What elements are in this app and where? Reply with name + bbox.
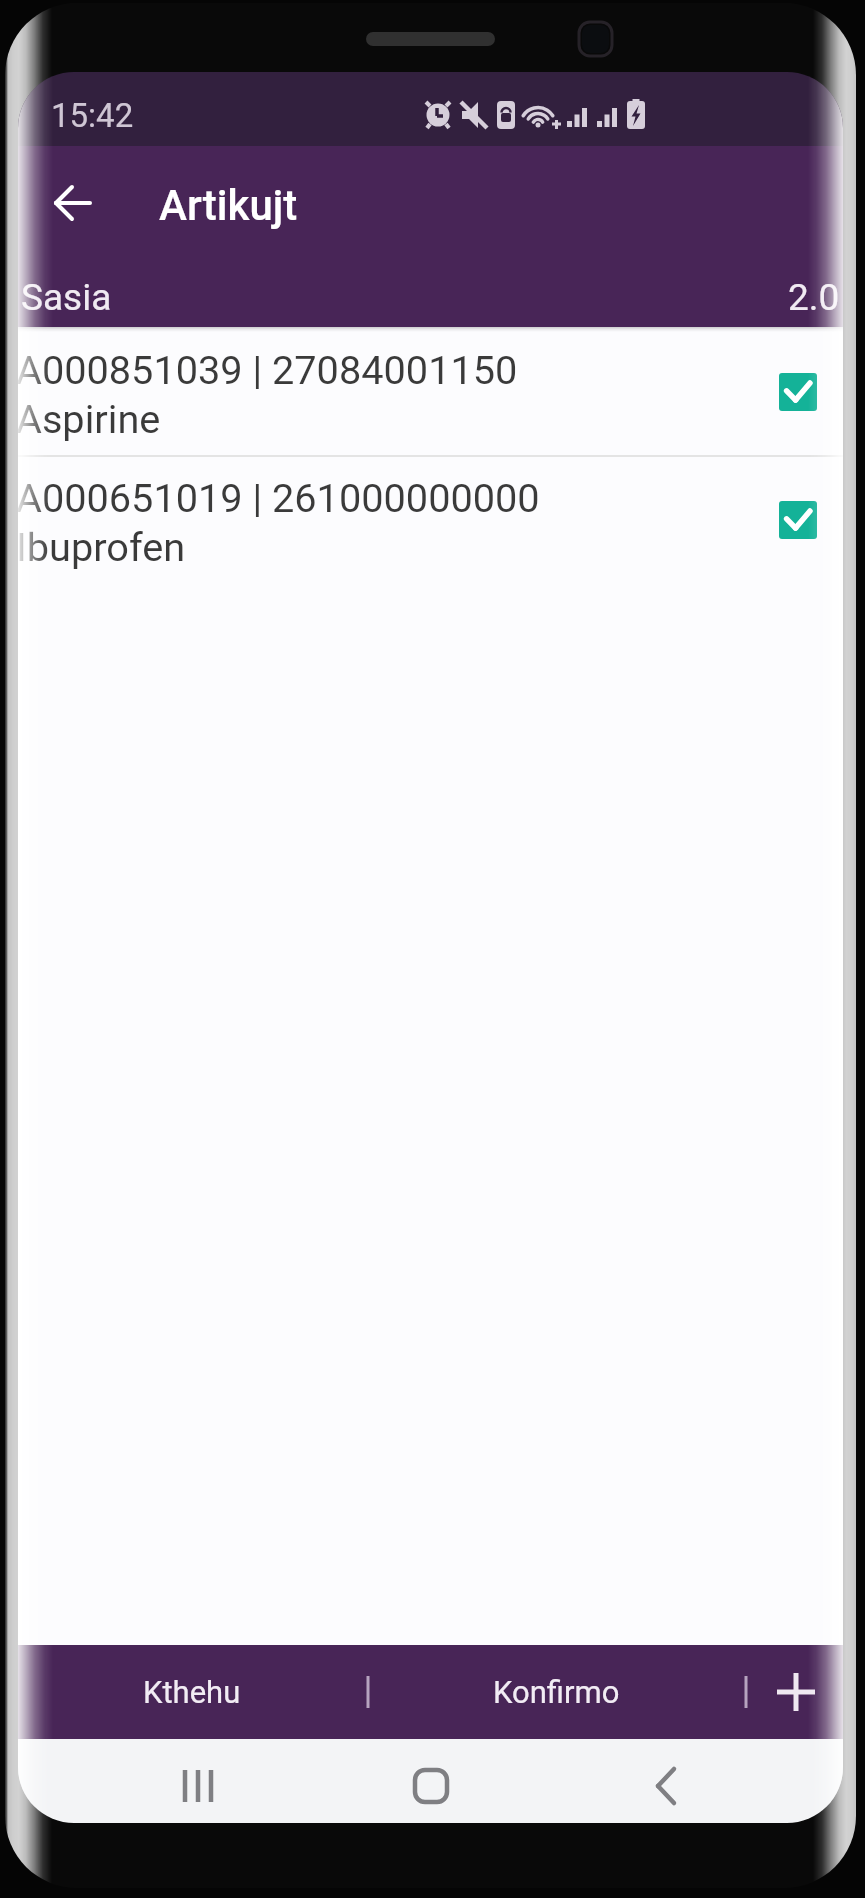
button[interactable]: Selected [779,501,817,539]
button[interactable]: Add item [749,1645,843,1739]
staticText: Aspirine [18,396,161,443]
staticText: Sasia [21,276,112,319]
staticText: Artikujt [159,181,298,230]
button[interactable]: Selected [779,373,817,411]
button[interactable]: Back [596,1744,736,1823]
button[interactable]: Home [361,1744,501,1823]
staticText: Konfirmo [493,1674,620,1710]
button[interactable]: Kthehu [18,1645,366,1739]
staticText: 15:42 [51,96,134,135]
button[interactable]: Konfirmo [366,1645,746,1739]
button[interactable]: Recent apps [128,1744,268,1823]
button[interactable]: A000851039 | 27084001150 [18,329,843,455]
button[interactable]: Back [40,170,106,236]
staticText: 2.0 [788,276,840,319]
staticText: Ibuprofen [18,524,186,571]
staticText: A000851039 | 27084001150 [18,347,518,394]
staticText: A000651019 | 261000000000 [18,475,540,522]
staticText: Kthehu [143,1674,241,1710]
button[interactable]: A000651019 | 261000000000 [18,457,843,583]
